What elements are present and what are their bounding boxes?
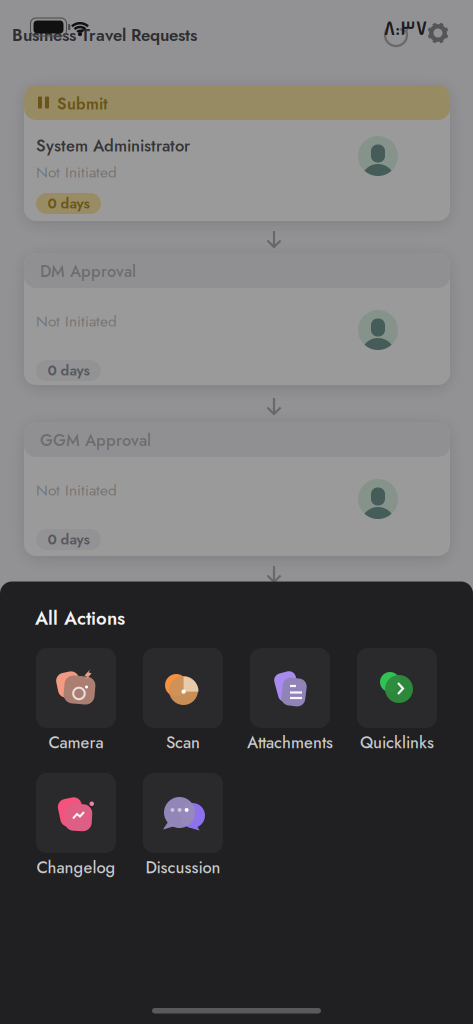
staticText: Quicklinks <box>360 730 434 754</box>
staticText: Scan <box>166 730 200 754</box>
staticText: Not Initiated <box>36 161 117 183</box>
staticText: Business Travel Requests <box>12 23 197 47</box>
button[interactable]: Refresh <box>383 22 409 48</box>
staticText: 0 days <box>47 360 89 381</box>
staticText: Not Initiated <box>36 479 117 501</box>
staticText: Changelog <box>36 855 115 879</box>
staticText: Attachments <box>247 730 333 754</box>
staticText: Discussion <box>145 855 220 879</box>
staticText: 0 days <box>47 529 89 550</box>
staticText: GGM Approval <box>40 428 151 452</box>
button[interactable]: Attachments <box>250 648 330 728</box>
button[interactable]: Settings <box>425 20 451 46</box>
button[interactable]: Scan <box>143 648 223 728</box>
staticText: 0 days <box>47 193 89 214</box>
staticText: ٨:٣٧ <box>384 17 427 39</box>
staticText: DM Approval <box>40 259 136 283</box>
staticText: System Administrator <box>36 134 190 158</box>
button[interactable]: Quicklinks <box>357 648 437 728</box>
button[interactable]: Camera <box>36 648 116 728</box>
button[interactable]: Changelog <box>36 773 116 853</box>
staticText: All Actions <box>35 605 125 632</box>
staticText: Camera <box>48 730 103 754</box>
staticText: Not Initiated <box>36 310 117 332</box>
staticText: Submit <box>57 92 108 115</box>
button[interactable]: Discussion <box>143 773 223 853</box>
